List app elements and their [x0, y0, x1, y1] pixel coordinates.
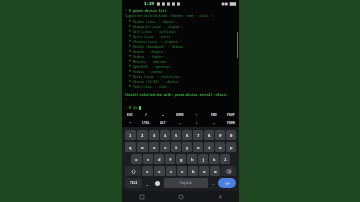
- staticText: k: [213, 157, 216, 162]
- staticText: e: [153, 145, 156, 150]
- button[interactable]: 3: [149, 130, 159, 140]
- staticText: 1: [129, 133, 132, 138]
- button[interactable]: j: [198, 154, 208, 164]
- button[interactable]: k: [209, 154, 219, 164]
- button[interactable]: 7: [193, 130, 203, 140]
- button[interactable]: o: [215, 142, 225, 152]
- staticText: Ubuntu (24.04) : ubuntu :: [133, 80, 182, 84]
- button[interactable]: g: [176, 154, 186, 164]
- button[interactable]: ↑: [188, 111, 205, 119]
- button[interactable]: ,: [143, 178, 151, 188]
- button[interactable]: 5: [171, 130, 181, 140]
- button[interactable]: 8: [204, 130, 214, 140]
- staticText: Install selected one with: proot-distro …: [125, 93, 228, 97]
- staticText: *: [129, 55, 133, 59]
- button[interactable]: END: [205, 111, 222, 119]
- staticText: j: [202, 157, 205, 162]
- button[interactable]: ?123: [125, 178, 142, 188]
- staticText: h: [191, 157, 194, 162]
- staticText: END: [211, 113, 217, 117]
- staticText: 5: [175, 133, 178, 138]
- button[interactable]: ESC: [122, 111, 138, 119]
- button[interactable]: Voice input: [152, 178, 163, 188]
- staticText: d: [158, 157, 161, 162]
- staticText: s: [147, 157, 150, 162]
- button[interactable]: n: [199, 166, 209, 176]
- button[interactable]: .: [209, 178, 217, 188]
- button[interactable]: Back: [200, 191, 239, 202]
- staticText: *: [129, 85, 133, 89]
- staticText: m: [214, 169, 217, 174]
- staticText: f: [169, 157, 172, 162]
- button[interactable]: 0: [226, 130, 236, 140]
- button[interactable]: s: [143, 154, 153, 164]
- button[interactable]: ←: [171, 119, 188, 127]
- staticText: .: [212, 181, 215, 186]
- button[interactable]: m: [210, 166, 220, 176]
- button[interactable]: HOME: [171, 111, 188, 119]
- button[interactable]: v: [177, 166, 187, 176]
- staticText: ←: [179, 121, 181, 125]
- button[interactable]: 9: [215, 130, 225, 140]
- staticText: r: [164, 145, 167, 150]
- button[interactable]: Shift: [125, 166, 141, 176]
- button[interactable]: 2: [137, 130, 148, 140]
- button[interactable]: Backspace: [221, 166, 236, 176]
- staticText: Supported distributions (format: name : …: [125, 14, 215, 18]
- staticText: *: [129, 40, 133, 44]
- staticText: Void Linux : void :: [133, 85, 171, 89]
- button[interactable]: p: [226, 142, 236, 152]
- button[interactable]: z: [142, 166, 153, 176]
- staticText: u: [197, 145, 200, 150]
- button[interactable]: h: [187, 154, 197, 164]
- button[interactable]: →: [205, 119, 222, 127]
- button[interactable]: c: [166, 166, 176, 176]
- button[interactable]: a: [131, 154, 142, 164]
- button[interactable]: 6: [182, 130, 192, 140]
- button[interactable]: PGDN: [222, 119, 239, 127]
- button[interactable]: English: [164, 178, 208, 188]
- staticText: CTRL: [142, 121, 150, 125]
- button[interactable]: x: [154, 166, 165, 176]
- button[interactable]: ~: [122, 119, 138, 127]
- staticText: b: [192, 169, 195, 174]
- button[interactable]: ALT: [154, 119, 171, 127]
- staticText: *: [129, 75, 133, 79]
- button[interactable]: Enter: [218, 178, 236, 188]
- button[interactable]: y: [182, 142, 192, 152]
- button[interactable]: q: [125, 142, 136, 152]
- button[interactable]: Recents: [122, 191, 161, 202]
- staticText: Arch Linux : archlinux :: [133, 30, 180, 34]
- staticText: ~ $ proot-distro list: [125, 8, 167, 12]
- staticText: ALT: [160, 121, 166, 125]
- button[interactable]: l: [220, 154, 230, 164]
- staticText: i: [208, 145, 211, 150]
- staticText: o: [219, 145, 222, 150]
- button[interactable]: —: [154, 111, 171, 119]
- button[interactable]: r: [160, 142, 170, 152]
- button[interactable]: CTRL: [138, 119, 154, 127]
- staticText: PGDN: [227, 121, 235, 125]
- button[interactable]: Home: [161, 191, 200, 202]
- button[interactable]: ↓: [188, 119, 205, 127]
- staticText: *: [129, 60, 133, 64]
- staticText: 2: [141, 133, 144, 138]
- staticText: x: [158, 169, 161, 174]
- button[interactable]: w: [137, 142, 148, 152]
- staticText: *: [129, 45, 133, 49]
- staticText: 4: [164, 133, 167, 138]
- button[interactable]: 4: [160, 130, 170, 140]
- button[interactable]: i: [204, 142, 214, 152]
- button[interactable]: b: [188, 166, 198, 176]
- button[interactable]: PGUP: [222, 111, 239, 119]
- button[interactable]: e: [149, 142, 159, 152]
- button[interactable]: d: [154, 154, 164, 164]
- button[interactable]: /: [138, 111, 154, 119]
- staticText: 0: [230, 133, 233, 138]
- button[interactable]: t: [171, 142, 181, 152]
- staticText: deepin : deepin :: [133, 50, 167, 54]
- button[interactable]: f: [165, 154, 175, 164]
- button[interactable]: u: [193, 142, 203, 152]
- button[interactable]: 1: [125, 130, 136, 140]
- staticText: 3: [153, 133, 156, 138]
